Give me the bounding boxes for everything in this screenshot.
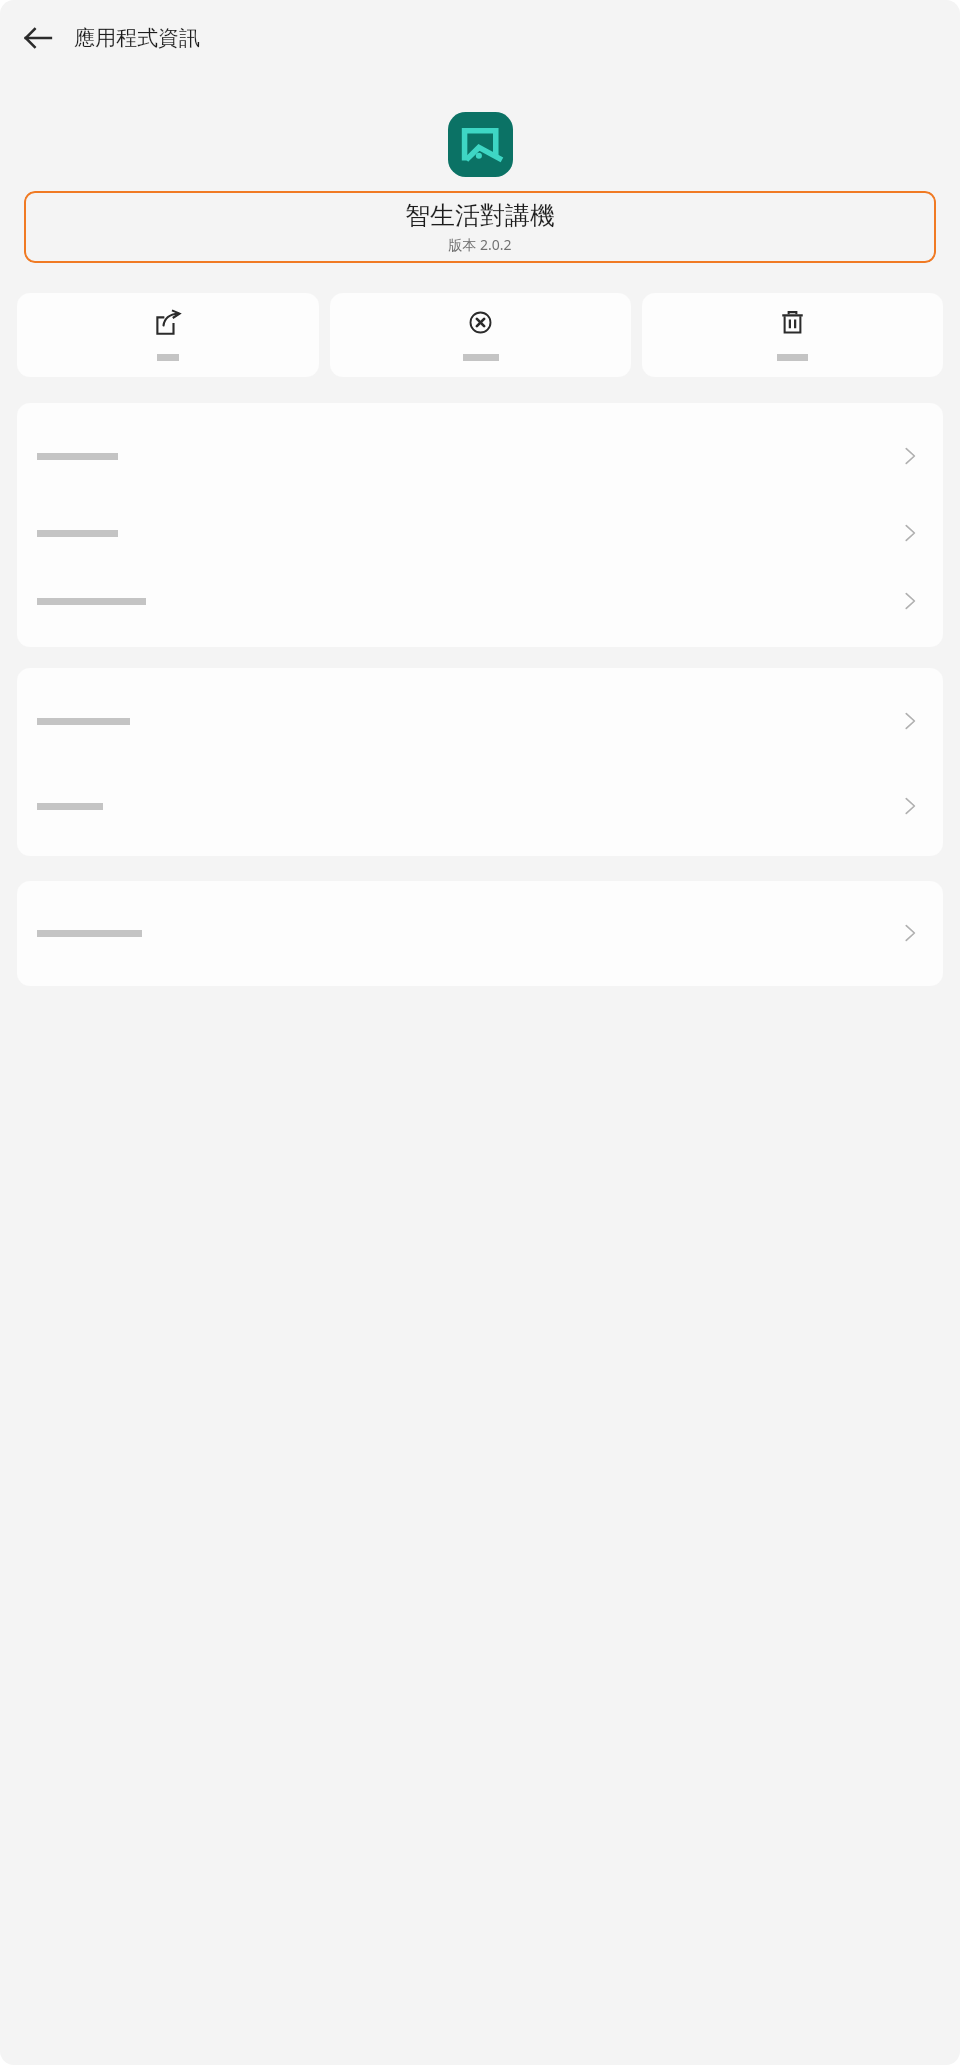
button[interactable]: Item 1 — [17, 432, 943, 480]
button[interactable]: Item 2 — [17, 509, 943, 557]
button[interactable]: Item 1 — [17, 697, 943, 745]
button[interactable]: 智生活對講機 — [24, 191, 936, 263]
button[interactable]: Item 3 — [17, 577, 943, 625]
button[interactable]: Uninstall — [642, 293, 943, 377]
button[interactable]: Item 1 — [17, 909, 943, 957]
button[interactable]: Force stop — [330, 293, 631, 377]
button[interactable]: Share — [17, 293, 319, 377]
staticText: 智生活對講機 — [405, 200, 555, 231]
button[interactable]: Item 2 — [17, 782, 943, 830]
staticText: 版本 2.0.2 — [448, 235, 512, 254]
staticText: 應用程式資訊 — [74, 25, 200, 51]
button[interactable]: Back — [14, 14, 62, 62]
